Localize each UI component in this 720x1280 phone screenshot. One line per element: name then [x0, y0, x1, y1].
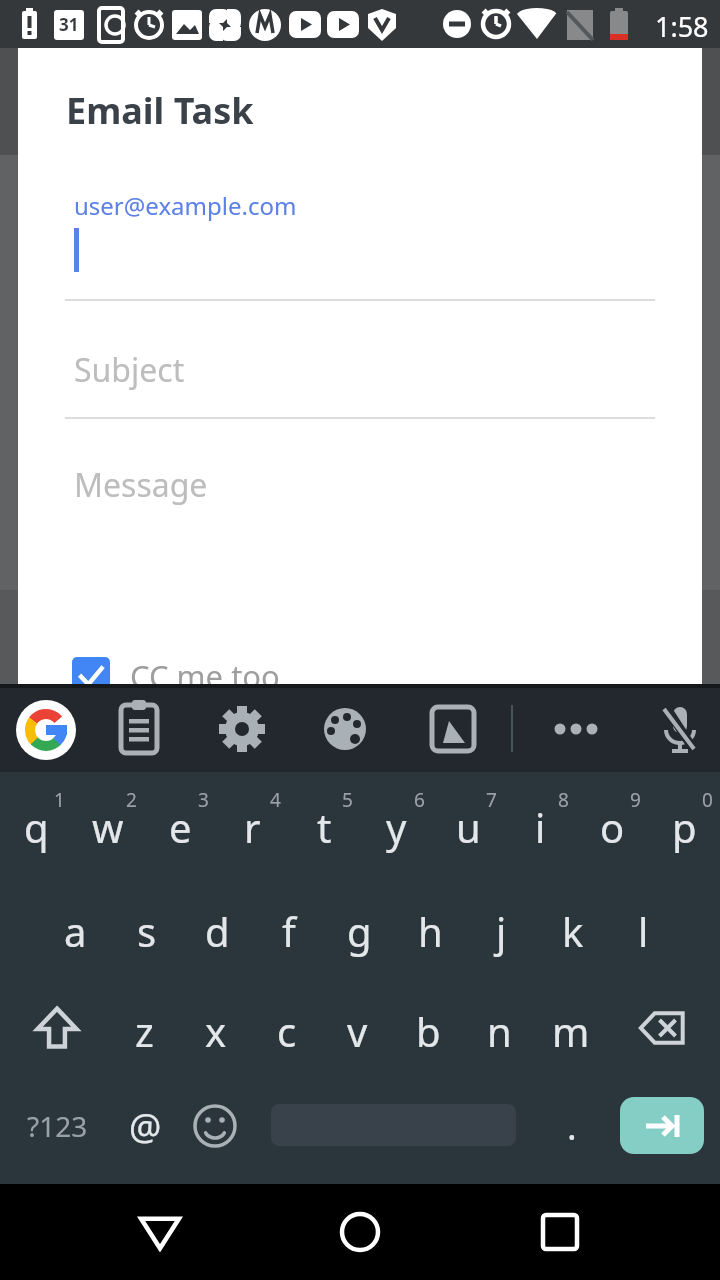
button[interactable]: h: [395, 888, 466, 974]
button[interactable]: c: [251, 988, 322, 1074]
staticText: user@example.com: [74, 189, 297, 222]
staticText: c: [277, 1004, 297, 1058]
button[interactable]: [12, 988, 102, 1068]
button[interactable]: [520, 1192, 600, 1272]
button[interactable]: CC me too: [72, 655, 280, 697]
button[interactable]: i: [504, 784, 576, 870]
staticText: n: [487, 1004, 512, 1058]
button[interactable]: j: [466, 888, 537, 974]
staticText: 1:58: [655, 8, 709, 45]
staticText: a: [64, 904, 87, 958]
staticText: Email Task: [66, 86, 254, 135]
staticText: h: [418, 904, 443, 958]
staticText: Message: [74, 463, 208, 507]
button[interactable]: ?123: [14, 1090, 100, 1162]
button[interactable]: .: [540, 1090, 604, 1162]
button[interactable]: [310, 694, 380, 764]
staticText: q: [24, 800, 49, 854]
staticText: d: [205, 904, 230, 958]
staticText: Subject: [74, 348, 185, 392]
button[interactable]: d: [182, 888, 253, 974]
button[interactable]: n: [464, 988, 535, 1074]
button[interactable]: q: [0, 784, 72, 870]
button[interactable]: f: [253, 888, 324, 974]
staticText: .: [567, 1102, 577, 1151]
staticText: 6: [414, 787, 425, 813]
button[interactable]: z: [109, 988, 180, 1074]
staticText: e: [169, 800, 192, 854]
button[interactable]: s: [111, 888, 182, 974]
button[interactable]: y: [360, 784, 432, 870]
button[interactable]: o: [576, 784, 648, 870]
staticText: j: [496, 904, 507, 958]
button[interactable]: [320, 1192, 400, 1272]
staticText: ?123: [27, 1107, 88, 1145]
staticText: v: [347, 1004, 368, 1058]
button[interactable]: [418, 694, 488, 764]
button[interactable]: t: [288, 784, 360, 870]
button[interactable]: [104, 694, 174, 764]
button[interactable]: @: [110, 1090, 180, 1162]
staticText: g: [347, 904, 372, 958]
staticText: 31: [59, 13, 79, 36]
staticText: 8: [558, 787, 569, 813]
staticText: w: [92, 800, 124, 854]
button[interactable]: m: [535, 988, 606, 1074]
staticText: CC me too: [130, 655, 280, 697]
button[interactable]: e: [144, 784, 216, 870]
button[interactable]: k: [537, 888, 608, 974]
button[interactable]: [541, 694, 611, 764]
staticText: @: [129, 1102, 162, 1151]
staticText: y: [386, 800, 407, 854]
staticText: t: [317, 800, 332, 854]
button[interactable]: [180, 1090, 250, 1162]
staticText: m: [552, 1004, 590, 1058]
staticText: k: [562, 904, 584, 958]
staticText: l: [638, 904, 649, 958]
button[interactable]: a: [40, 888, 111, 974]
button[interactable]: Subject: [65, 338, 655, 418]
button[interactable]: [207, 694, 277, 764]
staticText: o: [600, 800, 625, 854]
button[interactable]: g: [324, 888, 395, 974]
staticText: p: [672, 800, 697, 854]
staticText: 0: [702, 787, 713, 813]
staticText: 4: [270, 787, 281, 813]
staticText: i: [535, 800, 546, 854]
button[interactable]: Message: [65, 448, 655, 528]
staticText: x: [205, 1004, 227, 1058]
staticText: 2: [126, 787, 137, 813]
button[interactable]: p: [648, 784, 720, 870]
staticText: 7: [486, 787, 497, 813]
staticText: 1: [54, 787, 65, 813]
button[interactable]: v: [322, 988, 393, 1074]
button[interactable]: u: [432, 784, 504, 870]
button[interactable]: l: [608, 888, 679, 974]
staticText: z: [135, 1004, 154, 1058]
staticText: s: [137, 904, 157, 958]
button[interactable]: [120, 1192, 200, 1272]
staticText: 3: [198, 787, 209, 813]
staticText: r: [244, 800, 261, 854]
button[interactable]: x: [180, 988, 251, 1074]
button[interactable]: [16, 700, 76, 760]
button[interactable]: [645, 694, 715, 764]
button[interactable]: w: [72, 784, 144, 870]
staticText: u: [456, 800, 481, 854]
button[interactable]: b: [393, 988, 464, 1074]
staticText: 9: [630, 787, 641, 813]
staticText: 5: [342, 787, 353, 813]
button[interactable]: r: [216, 784, 288, 870]
button[interactable]: [615, 988, 708, 1068]
button[interactable]: [620, 1097, 704, 1154]
staticText: f: [282, 904, 296, 958]
staticText: b: [416, 1004, 441, 1058]
